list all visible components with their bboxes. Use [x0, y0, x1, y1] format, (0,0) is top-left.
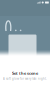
staticText: A soft glow for every late night. — [3, 77, 47, 80]
staticText: Set the scene — [12, 70, 38, 76]
